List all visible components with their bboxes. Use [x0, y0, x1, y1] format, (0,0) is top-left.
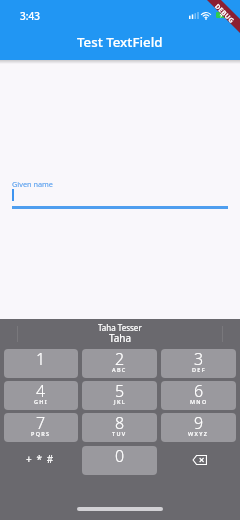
staticText: DEF [192, 366, 206, 373]
button[interactable]: 9 [161, 413, 236, 442]
button[interactable]: 0 [82, 446, 157, 475]
staticText: WXYZ [188, 430, 209, 437]
staticText: 9 [194, 413, 204, 434]
staticText: 3:43 [20, 9, 40, 23]
staticText: MNO [190, 398, 208, 405]
button[interactable]: 5 [82, 381, 157, 410]
staticText: GHI [34, 398, 48, 405]
staticText: DEBUG [213, 2, 236, 25]
staticText: 7 [36, 413, 46, 434]
button[interactable]: 1 [4, 349, 78, 378]
staticText: TUV [112, 430, 127, 437]
staticText: Given name [12, 179, 53, 189]
button[interactable]: Symbols [4, 446, 78, 475]
staticText: 8 [115, 413, 125, 434]
button[interactable]: Given name [12, 179, 228, 191]
button[interactable]: 7 [4, 413, 78, 442]
button[interactable]: Backspace [161, 446, 236, 475]
staticText: 0 [115, 446, 125, 467]
staticText: 3 [194, 349, 204, 370]
staticText: PQRS [31, 430, 51, 437]
button[interactable]: 3 [161, 349, 236, 378]
button[interactable]: Taha Tesser [85, 319, 155, 349]
staticText: Taha Tesser [98, 322, 142, 333]
staticText: Test TextField [77, 33, 163, 51]
staticText: JKL [114, 398, 126, 405]
staticText: 1 [36, 349, 46, 370]
staticText: 5 [115, 381, 125, 402]
staticText: 4 [36, 381, 46, 402]
staticText: 6 [194, 381, 204, 402]
staticText: 2 [115, 349, 125, 370]
button[interactable]: 2 [82, 349, 157, 378]
button[interactable]: 4 [4, 381, 78, 410]
button[interactable]: 8 [82, 413, 157, 442]
button[interactable]: 6 [161, 381, 236, 410]
staticText: + * # [26, 452, 55, 466]
staticText: ABC [112, 366, 127, 373]
staticText: Taha [109, 331, 132, 345]
